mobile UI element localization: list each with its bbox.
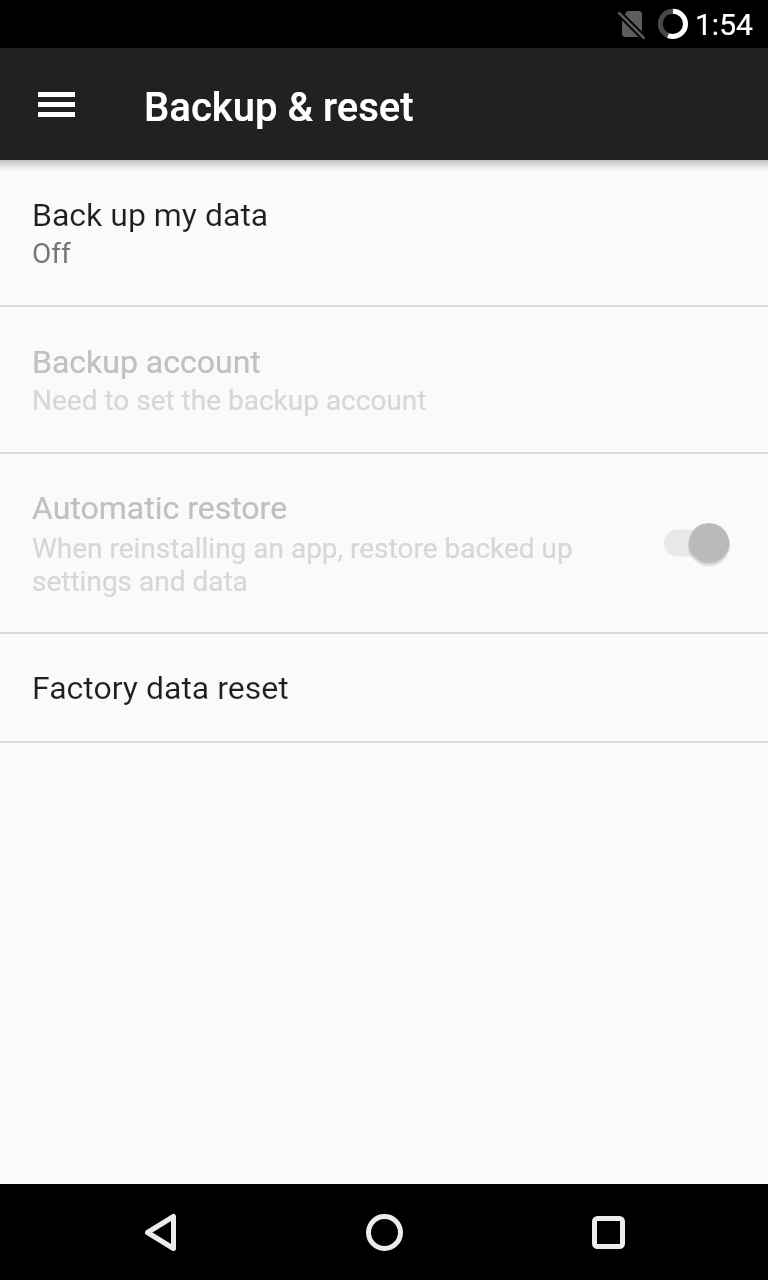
staticText: Back up my data bbox=[32, 196, 269, 234]
staticText: Need to set the backup account bbox=[32, 384, 427, 417]
staticText: When reinstalling an app, restore backed… bbox=[32, 532, 588, 598]
button[interactable]: Recent apps bbox=[560, 1184, 656, 1280]
button[interactable]: Home bbox=[336, 1184, 432, 1280]
staticText: Backup account bbox=[32, 343, 261, 381]
button[interactable]: Open navigation menu bbox=[20, 68, 92, 140]
button[interactable]: Factory data reset bbox=[0, 634, 768, 741]
staticText: Automatic restore bbox=[32, 489, 288, 527]
staticText: Off bbox=[32, 237, 71, 270]
button[interactable]: Back bbox=[112, 1184, 208, 1280]
staticText: Backup & reset bbox=[144, 84, 414, 131]
staticText: Factory data reset bbox=[32, 669, 289, 707]
staticText: 1:54 bbox=[695, 7, 753, 42]
button[interactable]: Automatic restore bbox=[0, 454, 768, 632]
button[interactable]: Automatic restore switch bbox=[664, 495, 760, 591]
other: No SIM card, battery bbox=[620, 0, 690, 48]
button[interactable]: Back up my data bbox=[0, 160, 768, 305]
button[interactable]: Backup account bbox=[0, 307, 768, 452]
